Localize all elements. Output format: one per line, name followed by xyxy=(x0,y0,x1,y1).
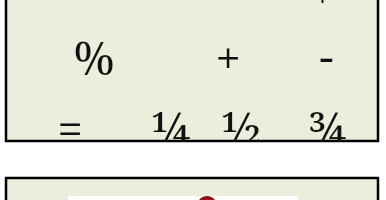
staticText: % xyxy=(73,26,115,89)
staticText: ¾ xyxy=(308,96,347,142)
staticText: + xyxy=(215,26,241,89)
button[interactable]: Insert + xyxy=(183,18,273,96)
staticText: = xyxy=(57,96,83,142)
button[interactable]: Insert ÷ xyxy=(5,0,155,18)
button[interactable]: Insert $ xyxy=(265,0,379,18)
button[interactable]: Insert = xyxy=(5,96,135,142)
staticText: ½ xyxy=(222,96,261,142)
button[interactable]: Insert % xyxy=(5,18,183,96)
button[interactable]: Insert ¼ xyxy=(135,96,207,142)
button[interactable]: Insert - xyxy=(273,18,379,96)
staticText: - xyxy=(319,24,334,87)
button[interactable]: Next panel xyxy=(5,177,379,200)
staticText: ¼ xyxy=(152,96,191,142)
staticText: $ xyxy=(310,0,335,12)
button[interactable]: Insert ¾ xyxy=(275,96,379,142)
button[interactable]: Insert ½ xyxy=(207,96,275,142)
